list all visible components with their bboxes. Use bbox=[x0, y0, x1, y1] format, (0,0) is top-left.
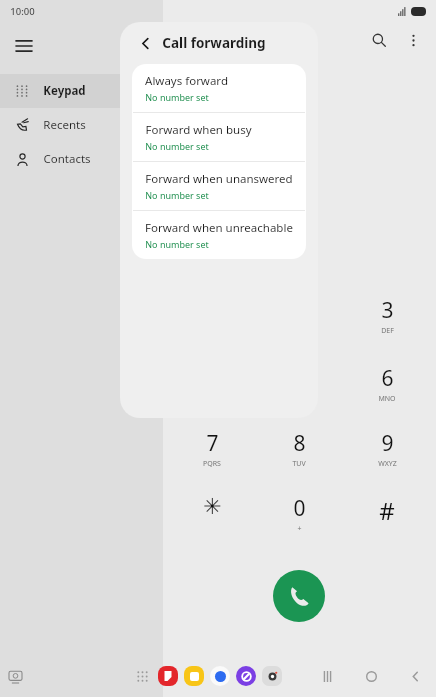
staticText: 9 bbox=[381, 429, 394, 458]
staticText: No number set bbox=[145, 238, 209, 250]
button[interactable]: Forward when busy bbox=[132, 112, 306, 161]
button[interactable]: Home bbox=[360, 665, 382, 687]
button[interactable]: Contacts bbox=[0, 142, 153, 176]
staticText: Contacts bbox=[43, 151, 91, 167]
button[interactable]: Always forward bbox=[132, 64, 306, 112]
button[interactable]: Back bbox=[404, 665, 426, 687]
button[interactable]: Forward when unanswered bbox=[132, 161, 306, 210]
button[interactable]: 9 bbox=[357, 429, 417, 481]
button[interactable]: App bbox=[158, 666, 178, 686]
staticText: Call forwarding bbox=[162, 34, 266, 52]
staticText: PQRS bbox=[203, 459, 221, 469]
button[interactable]: Back bbox=[132, 30, 158, 56]
button[interactable]: Recents bbox=[0, 108, 153, 142]
staticText: 6 bbox=[381, 364, 394, 393]
staticText: WXYZ bbox=[378, 459, 397, 469]
button[interactable]: 0 bbox=[269, 494, 329, 546]
staticText: 3 bbox=[381, 296, 394, 325]
button[interactable]: 3 bbox=[357, 296, 417, 348]
staticText: Recents bbox=[43, 117, 86, 133]
button[interactable]: 7 bbox=[182, 429, 242, 481]
staticText: DEF bbox=[381, 326, 394, 336]
button[interactable]: Forward when unreachable bbox=[132, 210, 306, 259]
staticText: Always forward bbox=[145, 73, 228, 89]
button[interactable]: Recent apps bbox=[4, 665, 26, 687]
button[interactable]: App bbox=[236, 666, 256, 686]
staticText: 7 bbox=[206, 429, 219, 458]
button[interactable]: Recents bbox=[316, 665, 338, 687]
button[interactable]: Menu bbox=[0, 22, 48, 70]
button[interactable]: Keypad bbox=[0, 74, 153, 108]
staticText: 0 bbox=[293, 494, 306, 523]
button[interactable]: App bbox=[210, 666, 230, 686]
button[interactable]: Call bbox=[273, 570, 325, 622]
staticText: ✳ bbox=[203, 494, 222, 520]
button[interactable]: 6 bbox=[357, 364, 417, 416]
staticText: Keypad bbox=[43, 83, 86, 99]
staticText: Forward when unanswered bbox=[145, 171, 293, 187]
staticText: Forward when busy bbox=[145, 122, 252, 138]
button[interactable]: More options bbox=[396, 23, 430, 57]
staticText: + bbox=[297, 524, 302, 534]
button[interactable]: 8 bbox=[269, 429, 329, 481]
staticText: No number set bbox=[145, 189, 209, 201]
staticText: TUV bbox=[292, 459, 306, 469]
button[interactable]: Search bbox=[362, 23, 396, 57]
staticText: 10:00 bbox=[10, 5, 35, 18]
button[interactable]: ✳ bbox=[182, 494, 242, 546]
staticText: # bbox=[379, 494, 395, 527]
staticText: No number set bbox=[145, 140, 209, 152]
staticText: MNO bbox=[378, 394, 396, 404]
staticText: No number set bbox=[145, 91, 209, 103]
button[interactable]: # bbox=[357, 494, 417, 546]
button[interactable]: App bbox=[184, 666, 204, 686]
button[interactable]: Apps bbox=[132, 666, 152, 686]
staticText: Forward when unreachable bbox=[145, 220, 293, 236]
staticText: 8 bbox=[293, 429, 306, 458]
button[interactable]: App bbox=[262, 666, 282, 686]
